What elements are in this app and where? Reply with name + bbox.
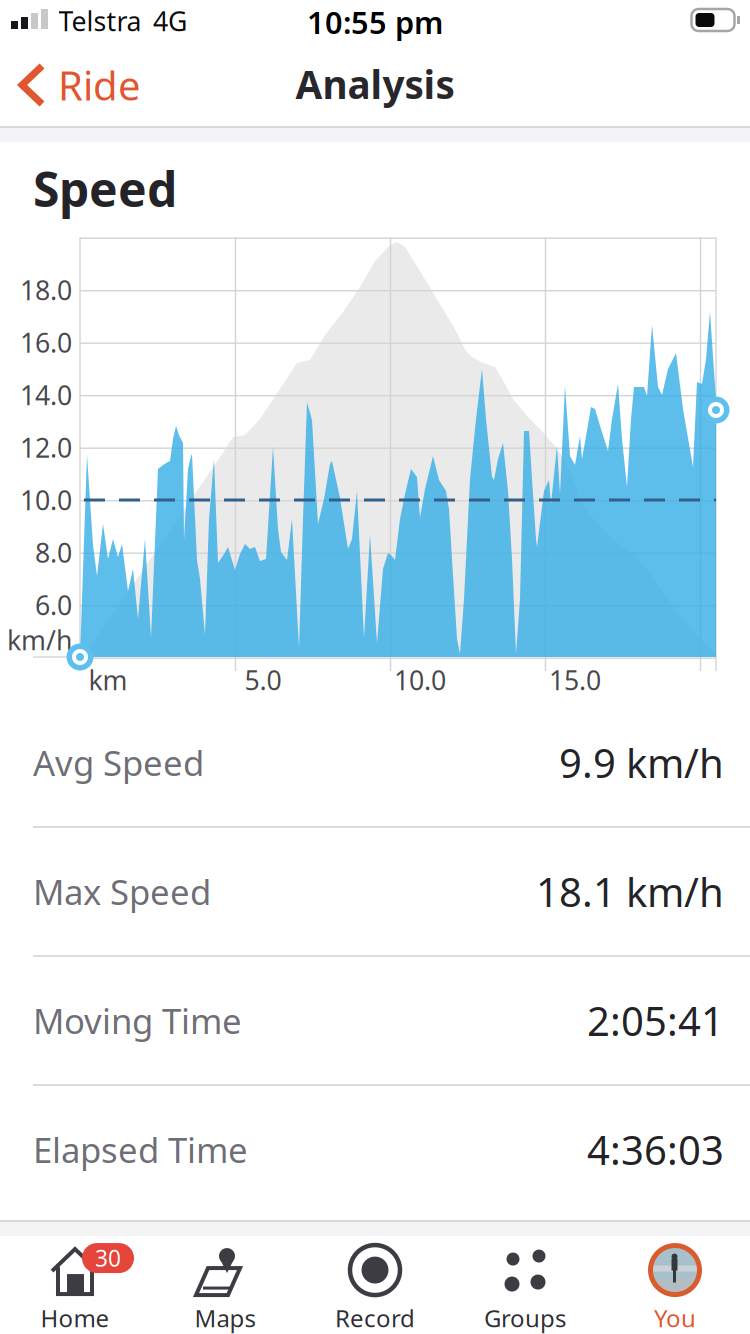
button[interactable]: You: [600, 1242, 750, 1334]
staticText: 4G: [153, 3, 187, 39]
staticText: Elapsed Time: [33, 1126, 248, 1172]
staticText: 10.0: [394, 662, 446, 698]
staticText: 30: [95, 1243, 121, 1273]
button[interactable]: Maps: [150, 1242, 300, 1334]
staticText: 15.0: [549, 662, 601, 698]
button[interactable]: 30: [0, 1242, 150, 1334]
staticText: 6.0: [35, 587, 72, 623]
staticText: 9.9 km/h: [559, 736, 724, 789]
staticText: 10:55 pm: [307, 2, 443, 42]
staticText: 18.1 km/h: [536, 865, 724, 918]
staticText: 2:05:41: [587, 994, 724, 1047]
staticText: Maps: [194, 1302, 255, 1334]
staticText: Moving Time: [33, 997, 242, 1043]
staticText: Record: [335, 1302, 415, 1334]
button[interactable]: Groups: [450, 1242, 600, 1334]
staticText: Ride: [58, 58, 141, 111]
staticText: 10.0: [20, 482, 72, 518]
staticText: Home: [40, 1302, 109, 1334]
staticText: Telstra: [58, 3, 141, 39]
staticText: 5.0: [244, 662, 281, 698]
staticText: km/h: [7, 622, 72, 658]
staticText: 16.0: [20, 325, 72, 360]
staticText: Avg Speed: [33, 739, 204, 785]
button[interactable]: Ride: [0, 58, 141, 111]
staticText: km: [88, 662, 127, 698]
staticText: 12.0: [20, 430, 72, 465]
staticText: 18.0: [20, 272, 72, 308]
staticText: Speed: [33, 157, 177, 220]
staticText: 4:36:03: [587, 1123, 724, 1176]
staticText: You: [654, 1302, 696, 1334]
staticText: 14.0: [20, 377, 72, 413]
staticText: Groups: [484, 1302, 566, 1334]
staticText: 8.0: [35, 535, 72, 570]
staticText: Analysis: [295, 58, 454, 110]
staticText: Max Speed: [33, 868, 211, 914]
button[interactable]: Record: [300, 1242, 450, 1334]
